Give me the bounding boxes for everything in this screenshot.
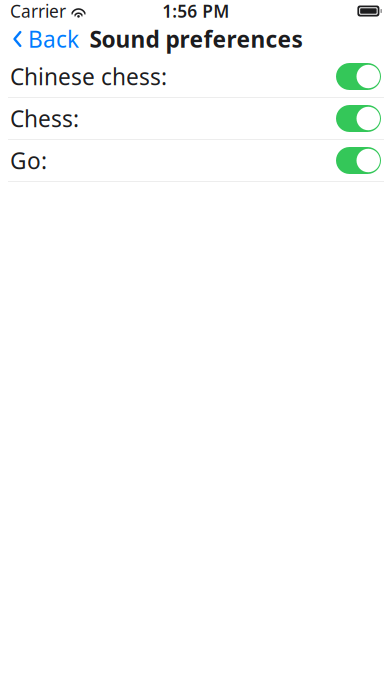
- staticText: Carrier: [10, 0, 66, 22]
- button[interactable]: Chinese chess:: [0, 56, 392, 98]
- staticText: Go:: [10, 145, 47, 175]
- staticText: Back: [28, 24, 79, 54]
- staticText: 1:56 PM: [162, 0, 229, 22]
- button[interactable]: Back: [4, 18, 87, 60]
- staticText: Sound preferences: [89, 24, 302, 54]
- button[interactable]: Go:: [0, 140, 392, 182]
- staticText: Chess:: [10, 103, 79, 133]
- button[interactable]: Chess:: [0, 98, 392, 140]
- staticText: Chinese chess:: [10, 61, 167, 91]
